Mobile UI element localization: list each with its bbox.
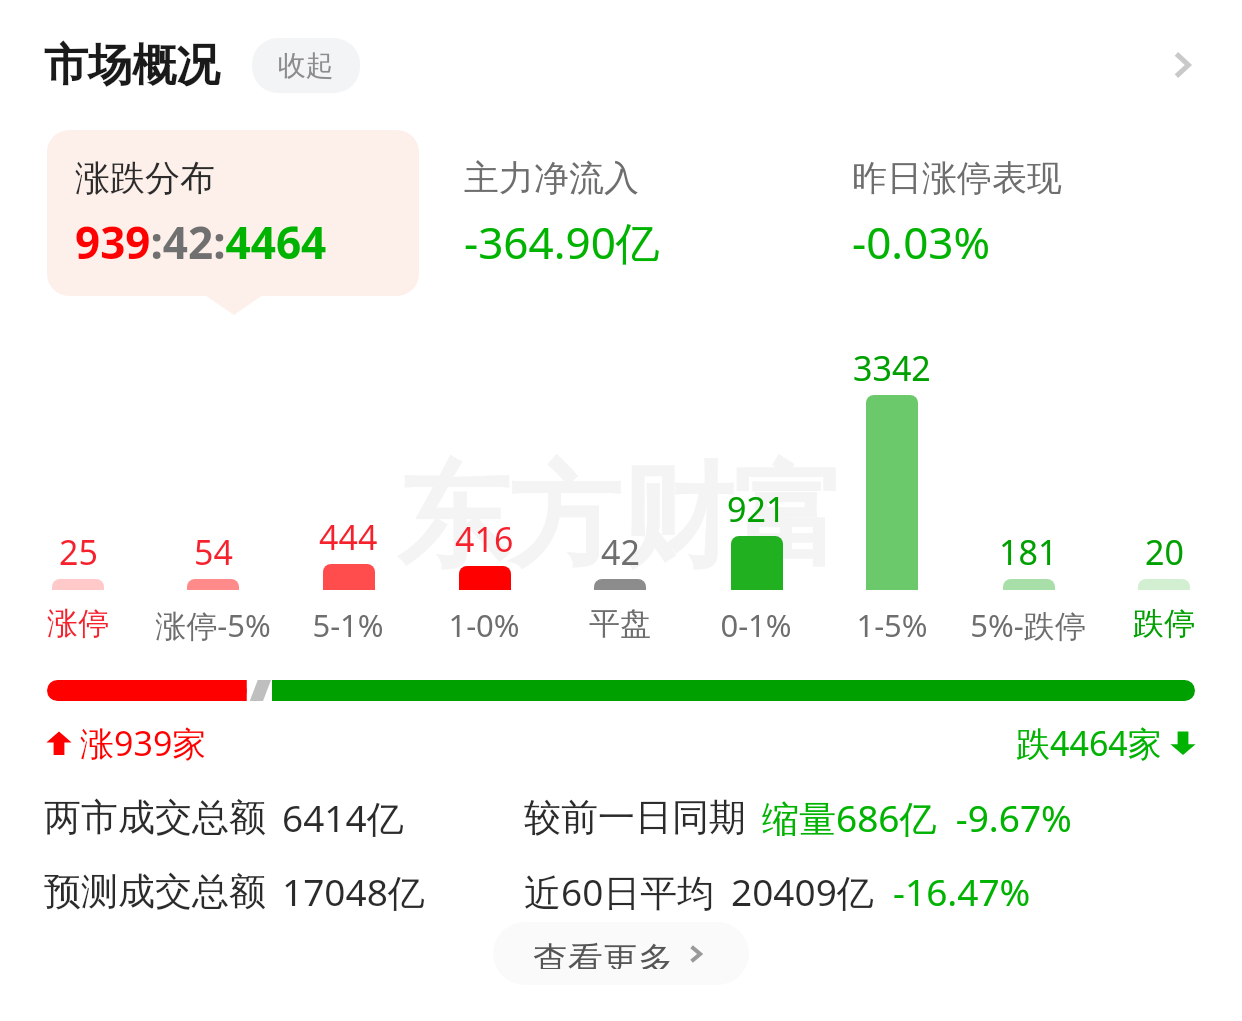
staticText: 20409亿 -16.47% bbox=[731, 866, 1031, 917]
staticText: 两市成交总额 bbox=[44, 794, 266, 841]
staticText: 42 bbox=[601, 529, 640, 575]
staticText: 东方财富 bbox=[397, 447, 845, 588]
staticText: 涨跌分布 bbox=[75, 156, 215, 200]
staticText: 1-0% bbox=[448, 604, 520, 646]
staticText: 181 bbox=[999, 529, 1058, 575]
button[interactable]: 昨日涨停表现 bbox=[824, 130, 1195, 296]
staticText: 939:42:4464 bbox=[75, 212, 327, 272]
staticText: 20 bbox=[1145, 529, 1184, 575]
staticText: -364.90亿 bbox=[464, 212, 660, 272]
staticText: 0-1% bbox=[720, 604, 792, 646]
staticText: 涨939家 bbox=[80, 720, 207, 766]
staticText: 25 bbox=[59, 529, 98, 575]
staticText: 跌停 bbox=[1133, 604, 1195, 643]
staticText: 444 bbox=[319, 514, 378, 560]
staticText: 54 bbox=[194, 529, 233, 575]
staticText: 1-5% bbox=[856, 604, 928, 646]
button[interactable]: 收起 bbox=[252, 38, 360, 93]
staticText: 近60日平均 bbox=[524, 866, 715, 917]
staticText: 3342 bbox=[853, 345, 931, 391]
staticText: 缩量686亿 -9.67% bbox=[762, 792, 1072, 843]
staticText: 查看更多 bbox=[533, 938, 673, 969]
staticText: 5%-跌停 bbox=[970, 604, 1086, 646]
staticText: 预测成交总额 bbox=[44, 868, 266, 915]
staticText: 市场概况 bbox=[44, 38, 220, 93]
staticText: 收起 bbox=[278, 48, 334, 83]
button[interactable]: 查看更多 bbox=[493, 922, 749, 985]
staticText: 17048亿 bbox=[282, 866, 425, 917]
staticText: 涨停-5% bbox=[155, 604, 271, 646]
staticText: 平盘 bbox=[589, 604, 651, 643]
button[interactable]: More bbox=[1146, 29, 1218, 101]
button[interactable]: 主力净流入 bbox=[436, 130, 807, 296]
staticText: 涨停 bbox=[47, 604, 109, 643]
staticText: 主力净流入 bbox=[464, 156, 639, 200]
staticText: 跌4464家 bbox=[1016, 720, 1162, 766]
staticText: 921 bbox=[727, 486, 786, 532]
staticText: -0.03% bbox=[852, 212, 991, 272]
staticText: 较前一日同期 bbox=[524, 794, 746, 841]
staticText: 6414亿 bbox=[282, 792, 404, 843]
staticText: 昨日涨停表现 bbox=[852, 156, 1062, 200]
staticText: 416 bbox=[455, 516, 514, 562]
staticText: 5-1% bbox=[312, 604, 384, 646]
button[interactable]: 涨跌分布 bbox=[47, 130, 419, 296]
